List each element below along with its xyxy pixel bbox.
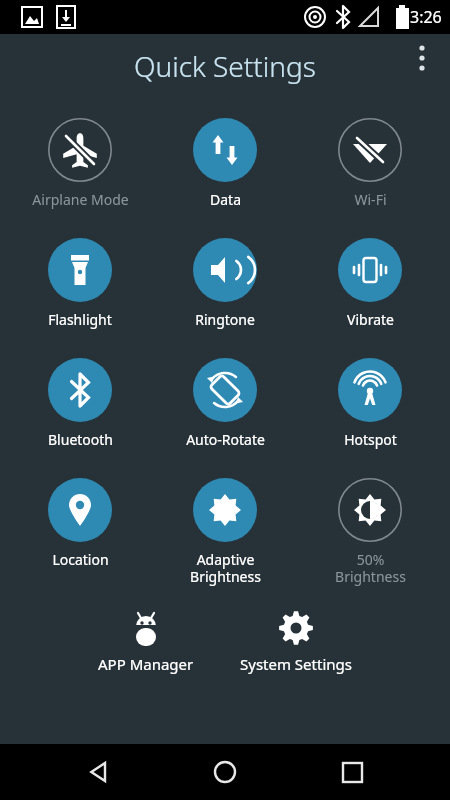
staticText: Wi-Fi (354, 190, 387, 209)
button[interactable]: Ringtone (160, 234, 290, 329)
button[interactable]: Adaptive Brightness (160, 474, 290, 586)
button[interactable]: 50% Brightness (305, 474, 435, 586)
staticText: Bluetooth (48, 430, 113, 449)
staticText: APP Manager (98, 654, 194, 674)
staticText: Hotspot (344, 430, 397, 449)
button[interactable]: Recent apps (324, 744, 380, 800)
button[interactable]: Auto-Rotate (160, 354, 290, 449)
button[interactable]: APP Manager (88, 604, 204, 678)
button[interactable]: More options (400, 36, 444, 80)
staticText: Airplane Mode (32, 190, 129, 209)
button[interactable]: Flashlight (15, 234, 145, 329)
staticText: Vibrate (347, 310, 394, 329)
button[interactable]: Airplane Mode (15, 114, 145, 209)
button[interactable]: Home (197, 744, 253, 800)
button[interactable]: Data (160, 114, 290, 209)
staticText: Adaptive Brightness (190, 550, 261, 586)
staticText: Location (52, 550, 109, 569)
button[interactable]: Wi-Fi (305, 114, 435, 209)
staticText: Flashlight (48, 310, 112, 329)
staticText: Quick Settings (134, 47, 316, 85)
staticText: 3:26 (410, 6, 442, 28)
staticText: Ringtone (195, 310, 255, 329)
staticText: Data (210, 190, 241, 209)
button[interactable]: System Settings (230, 604, 362, 678)
staticText: System Settings (240, 654, 352, 674)
button[interactable]: Bluetooth (15, 354, 145, 449)
button[interactable]: Location (15, 474, 145, 569)
button[interactable]: Back (71, 744, 127, 800)
button[interactable]: Hotspot (305, 354, 435, 449)
staticText: Auto-Rotate (186, 430, 265, 449)
staticText: 50% Brightness (335, 550, 406, 586)
button[interactable]: Vibrate (305, 234, 435, 329)
